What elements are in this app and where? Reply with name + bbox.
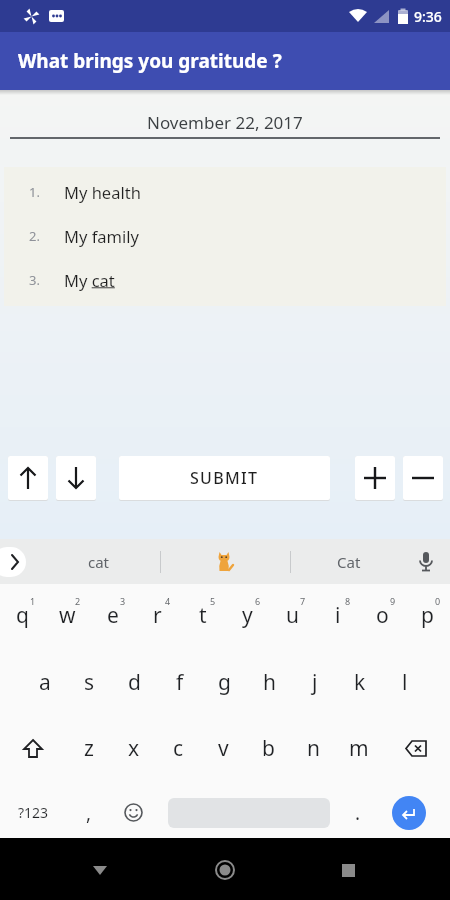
staticText: s: [84, 668, 95, 697]
button[interactable]: w: [45, 593, 90, 638]
button[interactable]: [0, 726, 66, 771]
staticText: i: [335, 601, 341, 630]
staticText: j: [312, 668, 318, 697]
staticText: k: [354, 668, 366, 697]
button[interactable]: [56, 456, 96, 500]
button[interactable]: [8, 456, 48, 500]
button[interactable]: ,: [66, 790, 111, 835]
button[interactable]: d: [112, 660, 157, 705]
button[interactable]: g: [202, 660, 247, 705]
staticText: w: [59, 601, 76, 630]
button[interactable]: [415, 551, 437, 573]
button[interactable]: .: [338, 790, 378, 835]
button[interactable]: u: [270, 593, 315, 638]
staticText: ?123: [18, 803, 49, 822]
staticText: 4: [165, 595, 171, 607]
staticText: x: [128, 734, 140, 763]
button[interactable]: m: [336, 726, 381, 771]
button[interactable]: t: [180, 593, 225, 638]
staticText: 0: [435, 595, 441, 607]
staticText: c: [173, 734, 184, 763]
staticText: f: [176, 668, 184, 697]
button[interactable]: [0, 547, 26, 577]
button[interactable]: c: [156, 726, 201, 771]
button[interactable]: Cat: [310, 539, 388, 584]
button[interactable]: l: [382, 660, 427, 705]
staticText: n: [307, 734, 320, 763]
staticText: l: [402, 668, 408, 697]
staticText: 5: [210, 595, 216, 607]
button[interactable]: a: [22, 660, 67, 705]
staticText: 1: [30, 595, 36, 607]
button[interactable]: n: [291, 726, 336, 771]
staticText: 2: [75, 595, 81, 607]
staticText: What brings you gratitude ?: [18, 48, 282, 74]
staticText: SUBMIT: [190, 467, 259, 489]
staticText: November 22, 2017: [147, 111, 303, 134]
button[interactable]: h: [247, 660, 292, 705]
staticText: v: [218, 734, 229, 763]
staticText: 3.: [29, 271, 40, 289]
button[interactable]: [403, 456, 443, 500]
staticText: z: [84, 734, 94, 763]
button[interactable]: q: [0, 593, 45, 638]
button[interactable]: x: [111, 726, 156, 771]
button[interactable]: r: [135, 593, 180, 638]
staticText: t: [199, 601, 207, 630]
staticText: 6: [255, 595, 261, 607]
button[interactable]: ?123: [0, 790, 66, 835]
button[interactable]: [328, 850, 368, 890]
staticText: o: [376, 601, 389, 630]
staticText: d: [128, 668, 141, 697]
staticText: u: [286, 601, 299, 630]
button[interactable]: cat: [60, 539, 138, 584]
staticText: g: [218, 668, 231, 697]
staticText: a: [39, 668, 51, 697]
button[interactable]: [80, 850, 120, 890]
staticText: q: [16, 601, 29, 630]
button[interactable]: p: [405, 593, 450, 638]
staticText: 2.: [29, 227, 40, 245]
staticText: p: [421, 601, 434, 630]
staticText: 3: [120, 595, 126, 607]
button[interactable]: [381, 726, 450, 771]
button[interactable]: s: [67, 660, 112, 705]
button[interactable]: [190, 539, 260, 584]
button[interactable]: v: [201, 726, 246, 771]
staticText: ,: [86, 800, 92, 826]
button[interactable]: [355, 456, 395, 500]
staticText: b: [262, 734, 275, 763]
button[interactable]: k: [337, 660, 382, 705]
staticText: h: [263, 668, 276, 697]
staticText: My health: [64, 181, 141, 203]
staticText: 1.: [29, 183, 40, 201]
button[interactable]: z: [66, 726, 111, 771]
button[interactable]: b: [246, 726, 291, 771]
button[interactable]: y: [225, 593, 270, 638]
button[interactable]: [392, 796, 426, 830]
button[interactable]: f: [157, 660, 202, 705]
button[interactable]: j: [292, 660, 337, 705]
staticText: e: [107, 601, 119, 630]
button[interactable]: 1.: [4, 167, 446, 306]
staticText: 8: [345, 595, 351, 607]
staticText: y: [242, 601, 253, 630]
button[interactable]: SUBMIT: [119, 456, 330, 500]
staticText: m: [349, 734, 369, 763]
button[interactable]: o: [360, 593, 405, 638]
button[interactable]: [205, 850, 245, 890]
staticText: r: [153, 601, 162, 630]
staticText: Cat: [337, 552, 361, 572]
staticText: cat: [88, 552, 110, 572]
staticText: My cat: [64, 269, 115, 291]
staticText: 9:36: [414, 7, 442, 26]
button[interactable]: [111, 790, 156, 835]
staticText: My family: [64, 225, 139, 247]
button[interactable]: e: [90, 593, 135, 638]
staticText: 9: [390, 595, 396, 607]
button[interactable]: i: [315, 593, 360, 638]
staticText: .: [355, 800, 361, 826]
staticText: 7: [300, 595, 306, 607]
